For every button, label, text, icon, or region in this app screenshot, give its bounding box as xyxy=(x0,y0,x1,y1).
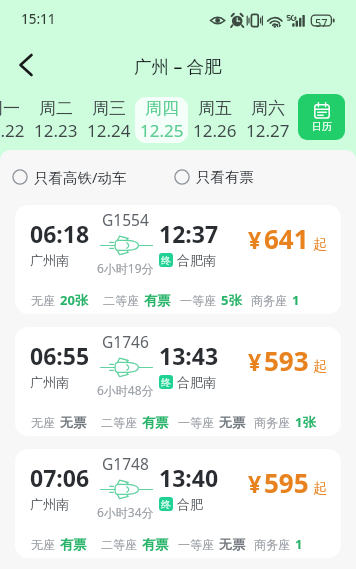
button[interactable]: 06:55 xyxy=(15,327,341,436)
staticText: 周一 xyxy=(0,98,20,119)
staticText: 有票 xyxy=(60,536,86,552)
staticText: 593 xyxy=(264,343,309,378)
staticText: 12:37 xyxy=(159,218,219,249)
button[interactable]: 只看有票 xyxy=(174,168,254,186)
staticText: ¥ xyxy=(248,346,262,377)
staticText: 二等座 xyxy=(103,293,139,308)
staticText: 周五 xyxy=(198,98,232,119)
staticText: 6小时34分 xyxy=(97,504,154,520)
staticText: 12.24 xyxy=(87,119,131,142)
staticText: 06:18 xyxy=(30,218,90,249)
staticText: 合肥南 xyxy=(177,374,216,390)
staticText: G1746 xyxy=(102,331,149,352)
staticText: 1张 xyxy=(295,413,316,431)
staticText: 无座 xyxy=(31,415,55,430)
staticText: 合肥 xyxy=(177,496,203,512)
staticText: 无票 xyxy=(219,414,245,430)
staticText: 一等座 xyxy=(180,293,216,308)
staticText: 6小时19分 xyxy=(97,260,154,276)
button[interactable]: 周五 xyxy=(188,97,241,143)
staticText: 有票 xyxy=(142,414,168,430)
staticText: 20张 xyxy=(60,291,88,309)
staticText: 二等座 xyxy=(101,415,137,430)
staticText: 1 xyxy=(295,535,303,553)
staticText: 有票 xyxy=(142,536,168,552)
staticText: G1554 xyxy=(102,209,149,230)
staticText: ¥ xyxy=(248,468,262,499)
staticText: 07:06 xyxy=(30,462,90,493)
staticText: 12.27 xyxy=(246,119,290,142)
staticText: 15:11 xyxy=(21,10,56,28)
staticText: 广州 – 合肥 xyxy=(134,54,222,78)
staticText: 13:43 xyxy=(159,340,219,371)
staticText: 57 xyxy=(315,15,328,30)
staticText: 13:40 xyxy=(159,462,219,493)
staticText: 商务座 xyxy=(251,293,287,308)
staticText: 12.23 xyxy=(34,119,78,142)
staticText: 12.26 xyxy=(193,119,237,142)
staticText: G1748 xyxy=(102,453,149,474)
button[interactable]: 周一 xyxy=(0,97,29,143)
staticText: 终 xyxy=(161,254,171,267)
staticText: 只看有票 xyxy=(196,168,254,186)
button[interactable]: Back xyxy=(6,46,44,84)
button[interactable]: 周四 xyxy=(135,97,188,143)
staticText: 周三 xyxy=(92,98,126,119)
staticText: 无座 xyxy=(31,537,55,552)
staticText: 终 xyxy=(161,376,171,389)
staticText: 二等座 xyxy=(101,537,137,552)
staticText: 广州南 xyxy=(30,496,69,512)
staticText: 起 xyxy=(313,480,327,498)
staticText: 日历 xyxy=(312,120,332,133)
staticText: 周四 xyxy=(145,98,179,119)
staticText: 终 xyxy=(161,498,171,511)
staticText: 有票 xyxy=(144,292,170,308)
staticText: 一等座 xyxy=(178,537,214,552)
button[interactable]: 07:06 xyxy=(15,449,341,558)
button[interactable]: 只看高铁/动车 xyxy=(12,167,127,187)
staticText: 广州南 xyxy=(30,252,69,268)
staticText: 641 xyxy=(264,221,309,256)
staticText: 无票 xyxy=(219,536,245,552)
staticText: 1 xyxy=(292,291,300,309)
staticText: 12.25 xyxy=(140,119,184,142)
staticText: 一等座 xyxy=(178,415,214,430)
button[interactable]: 06:18 xyxy=(15,205,341,314)
staticText: 起 xyxy=(313,236,327,254)
staticText: 无座 xyxy=(31,293,55,308)
staticText: 合肥南 xyxy=(177,252,216,268)
staticText: 周二 xyxy=(39,98,73,119)
staticText: 广州南 xyxy=(30,374,69,390)
staticText: 595 xyxy=(264,465,309,500)
staticText: 只看高铁/动车 xyxy=(34,167,127,187)
staticText: 商务座 xyxy=(254,537,290,552)
button[interactable]: 周三 xyxy=(82,97,135,143)
staticText: 12.22 xyxy=(0,119,25,142)
staticText: ¥ xyxy=(248,224,262,255)
staticText: 无票 xyxy=(60,414,86,430)
staticText: 起 xyxy=(313,358,327,376)
staticText: 商务座 xyxy=(254,415,290,430)
staticText: 6小时48分 xyxy=(97,382,154,398)
staticText: 06:55 xyxy=(30,340,90,371)
button[interactable]: 日历 xyxy=(298,94,345,140)
staticText: 5张 xyxy=(221,291,242,309)
button[interactable]: 周六 xyxy=(241,97,294,143)
button[interactable]: 周二 xyxy=(29,97,82,143)
staticText: 周六 xyxy=(251,98,285,119)
